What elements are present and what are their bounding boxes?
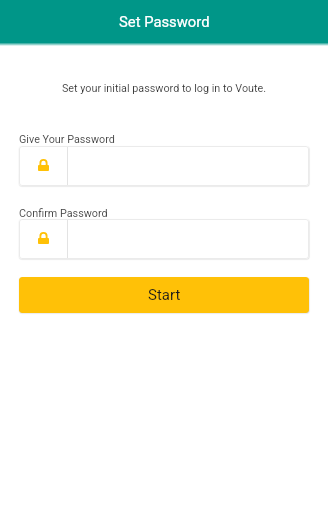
staticText: Confirm Password — [19, 207, 108, 220]
staticText: Start — [148, 286, 181, 304]
staticText: Set Password — [119, 13, 210, 30]
button[interactable]: Give Your Password — [19, 146, 309, 186]
button[interactable]: Start — [19, 277, 309, 313]
staticText: Give Your Password — [19, 133, 115, 146]
button[interactable]: Confirm Password — [19, 219, 309, 259]
staticText: Set your initial password to log in to V… — [0, 82, 328, 95]
